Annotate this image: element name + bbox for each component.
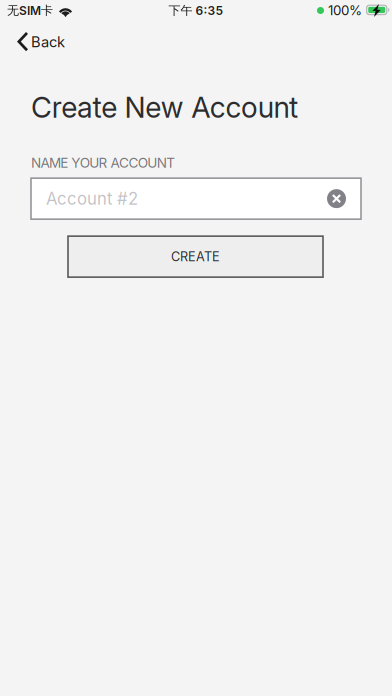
staticText: 下午 6:35 [168,3,223,18]
staticText: 无SIM卡 [7,3,53,18]
staticText: Back [31,33,65,51]
button[interactable]: Clear text [321,179,352,218]
staticText: Create New Account [31,90,298,125]
button[interactable]: Back [0,22,83,56]
staticText: NAME YOUR ACCOUNT [31,155,175,171]
button[interactable]: CREATE [68,236,323,277]
staticText: 100% [328,2,362,18]
button[interactable]: Account #2 [31,178,361,219]
staticText: Account #2 [46,189,138,209]
staticText: CREATE [171,249,220,264]
